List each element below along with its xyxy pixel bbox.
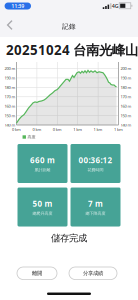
button[interactable]: Back: [7, 20, 13, 30]
staticText: 1 km: [114, 127, 123, 132]
button[interactable]: 離開: [17, 267, 57, 279]
staticText: 160 m: [4, 103, 15, 109]
staticText: 11:39: [11, 2, 24, 10]
staticText: 140 m: [120, 122, 131, 128]
staticText: 20251024 台南光峰山: [6, 41, 138, 59]
staticText: 4G: [112, 2, 119, 10]
button[interactable]: 分享成績: [69, 267, 117, 279]
staticText: 160 m: [120, 103, 131, 109]
staticText: 0 km: [32, 127, 41, 132]
staticText: 200 m: [4, 66, 15, 71]
staticText: 170 m: [120, 94, 131, 99]
staticText: 190 m: [120, 75, 131, 81]
staticText: 1 km: [94, 127, 103, 132]
staticText: 00:36:12: [78, 155, 112, 165]
staticText: 660 m: [30, 155, 55, 165]
staticText: 140 m: [4, 122, 15, 128]
staticText: 累計距離: [34, 167, 50, 172]
staticText: 1 km: [73, 127, 82, 132]
staticText: 0 km: [53, 127, 62, 132]
staticText: 180 m: [4, 85, 15, 90]
staticText: 儲存完成: [51, 232, 87, 244]
staticText: 離開: [32, 270, 42, 277]
staticText: 200 m: [120, 66, 131, 71]
staticText: 170 m: [4, 94, 15, 99]
staticText: 7 m: [88, 198, 103, 209]
staticText: 記錄: [62, 22, 76, 31]
staticText: 150 m: [120, 113, 131, 118]
staticText: 150 m: [4, 113, 15, 118]
staticText: 190 m: [4, 75, 15, 81]
staticText: 0 km: [12, 127, 21, 132]
staticText: 總爬升高度: [32, 211, 52, 216]
staticText: 分享成績: [83, 270, 103, 277]
staticText: 高度: [27, 134, 35, 139]
staticText: 花費時間: [87, 167, 103, 172]
staticText: 180 m: [120, 85, 131, 90]
staticText: 總下降高度: [85, 211, 105, 216]
staticText: 50 m: [32, 198, 52, 209]
